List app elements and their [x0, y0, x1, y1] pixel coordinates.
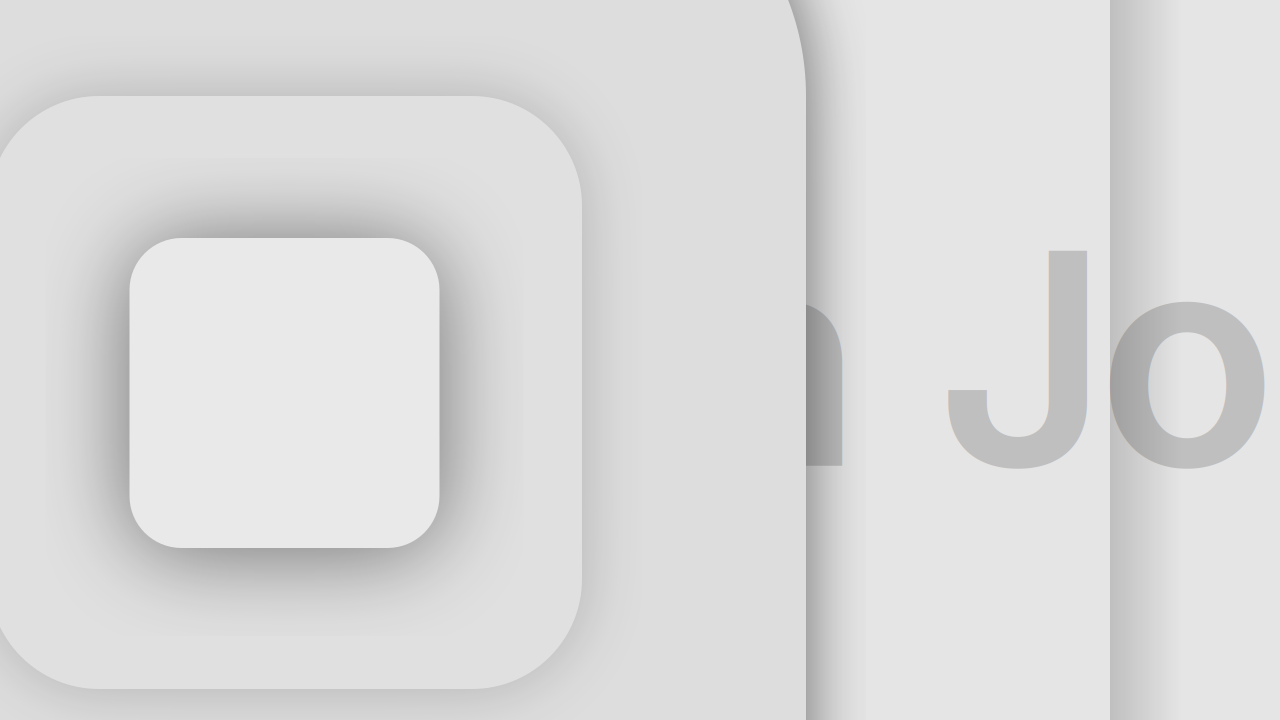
staticText: Brian J — [119, 179, 1109, 537]
button[interactable]: Brian J — [119, 179, 1109, 537]
staticText: ordan — [1097, 179, 1280, 537]
button[interactable]: ordan — [1097, 179, 1280, 537]
